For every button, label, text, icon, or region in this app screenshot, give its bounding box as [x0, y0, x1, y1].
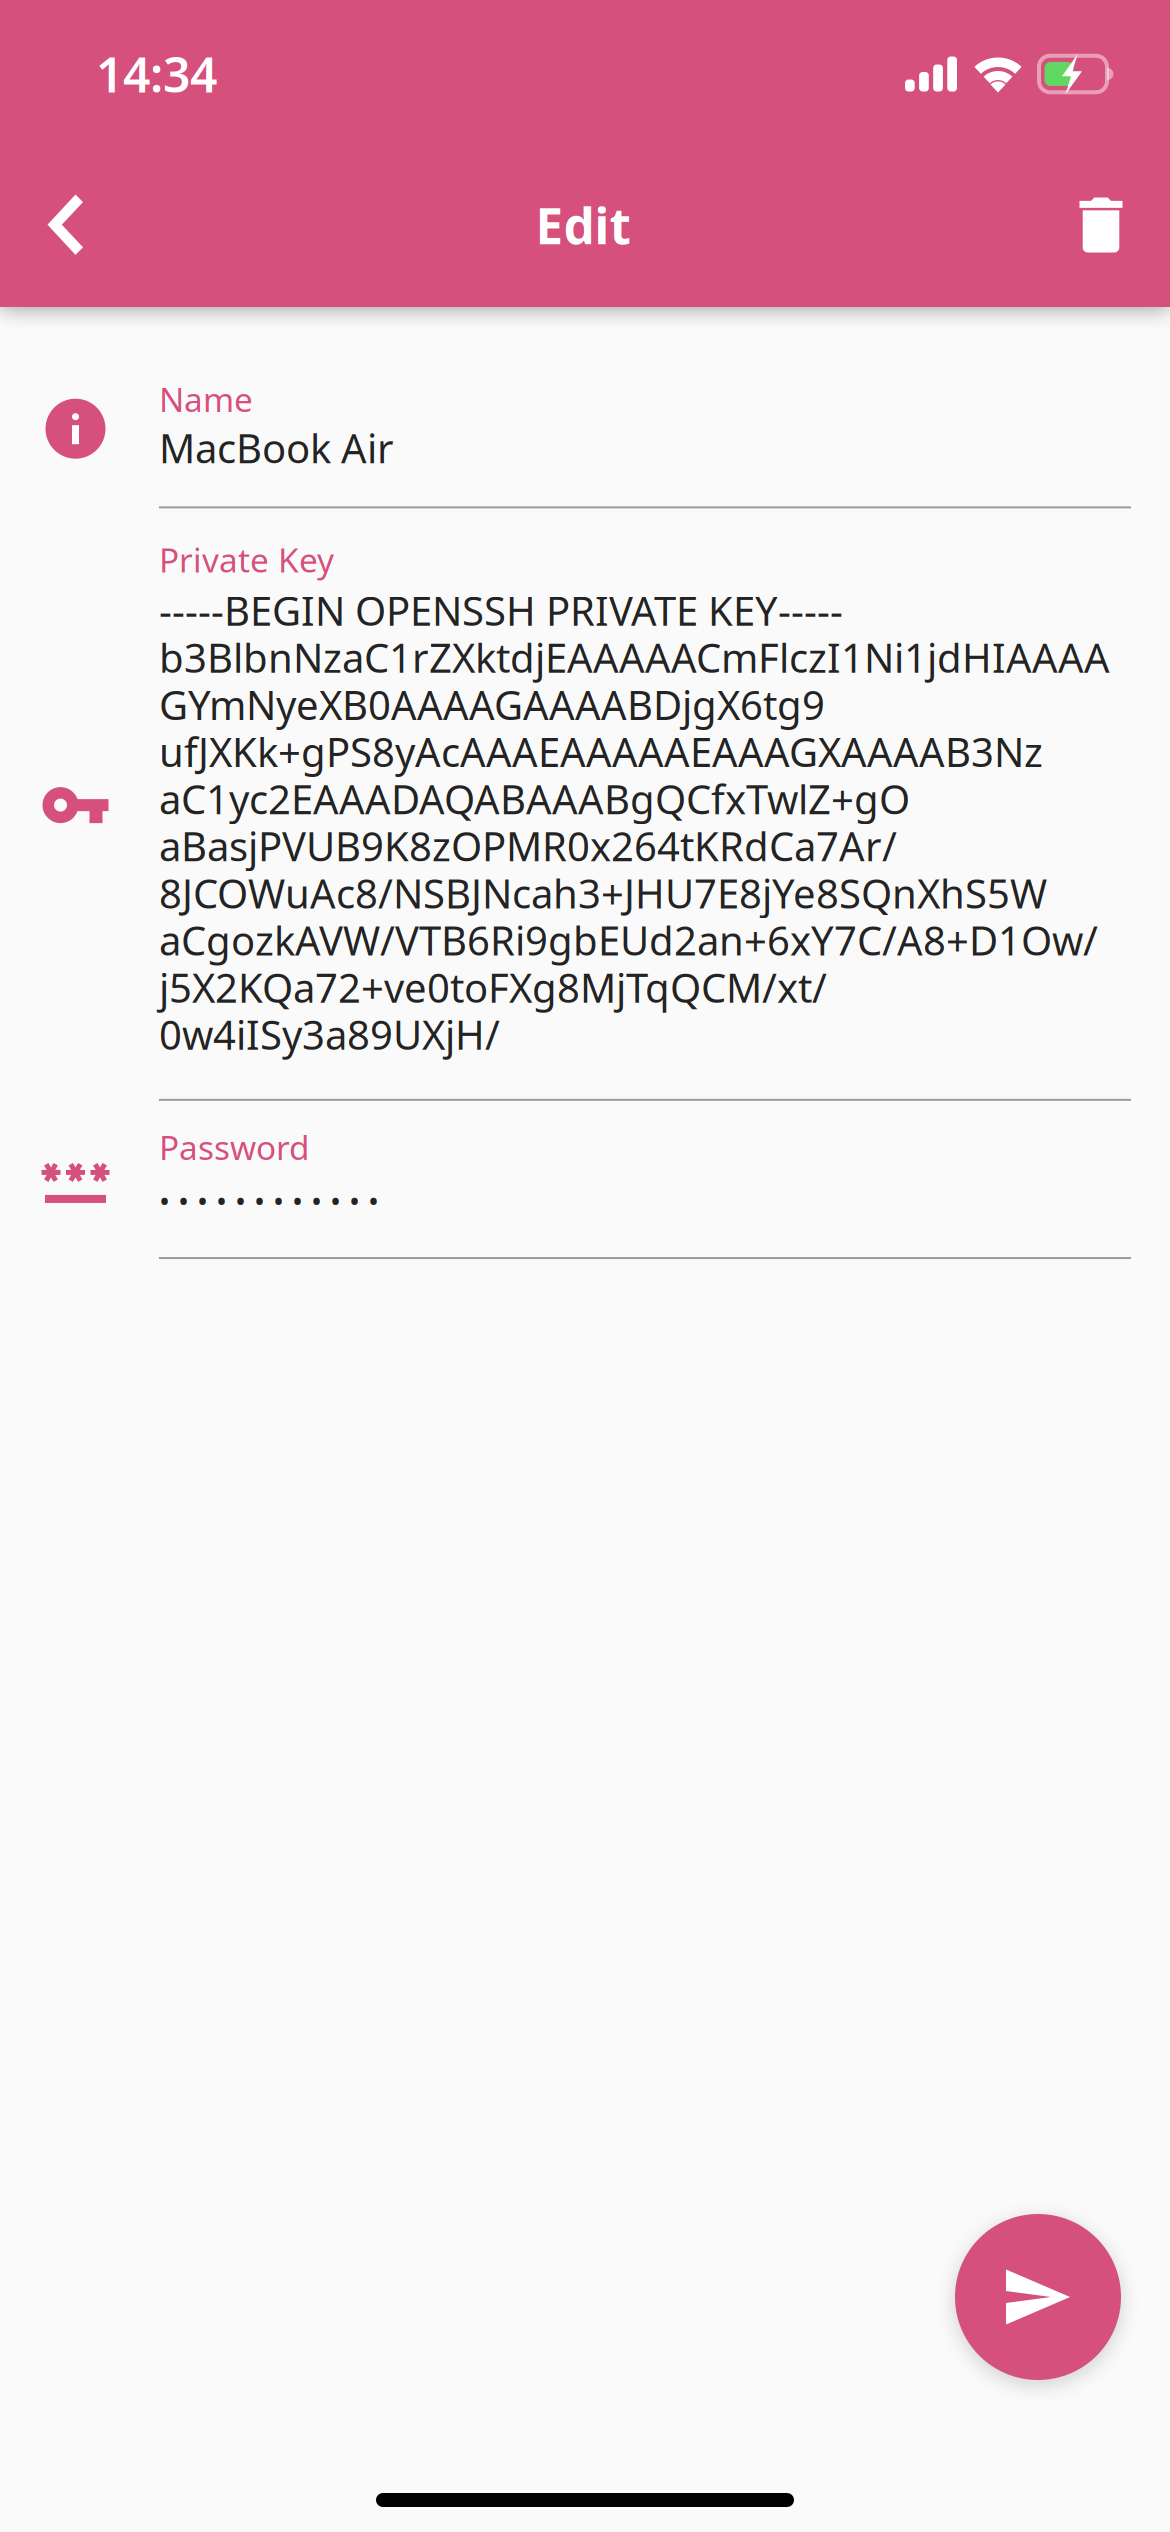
staticText: aBasjPVUB9K8zOPMR0x264tKRdCa7Ar/	[159, 819, 897, 872]
staticText: b3BlbnNzaC1rZXktdjEAAAAACmFlczI1Ni1jdHIA…	[159, 631, 1110, 684]
staticText: 8JCOWuAc8/NSBJNcah3+JHU7E8jYe8SQnXhS5W	[159, 866, 1047, 919]
button[interactable]: Password	[0, 1125, 1170, 1259]
staticText: GYmNyeXB0AAAAGAAAABDjgX6tg9	[159, 678, 825, 731]
staticText: MacBook Air	[159, 421, 394, 474]
staticText: Password	[159, 1125, 310, 1169]
button[interactable]: Private Key	[0, 537, 1170, 1101]
staticText: 0w4iISy3a89UXjH/	[159, 1008, 500, 1061]
staticText: ufJXKk+gPS8yAcAAAEAAAAAEAAAGXAAAAB3Nz	[159, 725, 1043, 778]
staticText: aCgozkAVW/VTB6Ri9gbEUd2an+6xY7C/A8+D1Ow/	[159, 913, 1098, 967]
button[interactable]: Delete	[1043, 167, 1159, 283]
button[interactable]: Name	[0, 377, 1170, 508]
staticText: j5X2KQa72+ve0toFXg8MjTqQCM/xt/	[159, 961, 827, 1014]
button[interactable]: Back	[7, 167, 123, 283]
staticText: Name	[159, 377, 253, 421]
staticText: • • • • • • • • • • • •	[159, 1181, 379, 1220]
button[interactable]: Send	[955, 2214, 1121, 2380]
staticText: Edit	[535, 192, 630, 258]
staticText: -----BEGIN OPENSSH PRIVATE KEY-----	[159, 584, 843, 637]
staticText: Private Key	[159, 537, 334, 582]
staticText: 14:34	[96, 42, 217, 106]
staticText: aC1yc2EAAADAQABAAABgQCfxTwlZ+gO	[159, 772, 910, 825]
